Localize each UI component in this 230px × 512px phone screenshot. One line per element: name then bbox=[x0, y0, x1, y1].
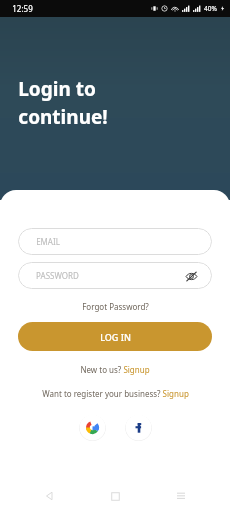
button[interactable]: LOG IN bbox=[18, 322, 212, 351]
button[interactable]: Recent apps bbox=[164, 480, 198, 512]
staticText: PASSWORD bbox=[36, 270, 79, 281]
staticText: EMAIL bbox=[36, 236, 60, 247]
button[interactable]: PASSWORD bbox=[18, 262, 212, 289]
staticText: LOG IN bbox=[100, 331, 131, 343]
button[interactable]: Home bbox=[98, 480, 132, 512]
staticText: Want to register your business? Signup bbox=[42, 388, 189, 399]
button[interactable]: New to us? Signup bbox=[76, 363, 154, 376]
button[interactable]: Sign in with Google bbox=[79, 414, 106, 441]
staticText: Forgot Password? bbox=[82, 301, 149, 312]
staticText: New to us? Signup bbox=[80, 364, 150, 375]
staticText: 40% bbox=[204, 4, 217, 13]
staticText: continue! bbox=[18, 104, 108, 130]
button[interactable]: Want to register your business? Signup bbox=[38, 387, 193, 400]
button[interactable]: Sign in with Facebook bbox=[125, 414, 152, 441]
button[interactable]: Forgot Password? bbox=[78, 300, 153, 313]
staticText: 12:59 bbox=[12, 3, 33, 14]
button[interactable]: Back bbox=[32, 480, 66, 512]
staticText: Login to bbox=[18, 76, 96, 102]
button[interactable]: EMAIL bbox=[18, 228, 212, 255]
button[interactable]: Toggle password visibility bbox=[182, 267, 200, 285]
